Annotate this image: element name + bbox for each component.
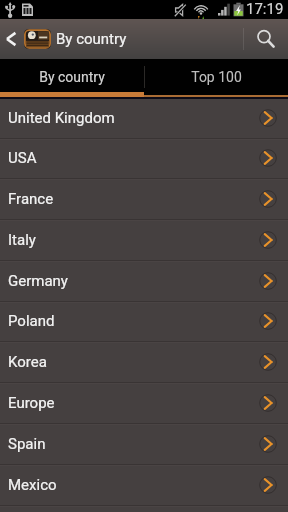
button[interactable]: Spain [0,425,288,464]
staticText: 17:19 [246,0,284,17]
staticText: Top 100 [191,69,242,85]
staticText: Spain [8,435,46,453]
staticText: Germany [8,272,68,290]
staticText: United Kingdom [8,109,115,127]
button[interactable]: France [0,180,288,219]
button[interactable]: Europe [0,384,288,423]
button[interactable]: Germany [0,262,288,301]
button[interactable]: United Kingdom [0,99,288,138]
staticText: Korea [8,353,47,371]
button[interactable]: Korea [0,343,288,382]
staticText: By country [56,30,127,48]
button[interactable]: Search [244,19,288,59]
staticText: Europe [8,394,55,412]
button[interactable]: Top 100 [144,61,288,92]
staticText: Mexico [8,476,57,494]
staticText: Poland [8,312,55,330]
staticText: By country [39,69,105,85]
button[interactable]: Italy [0,221,288,260]
staticText: Italy [8,231,36,249]
button[interactable]: Poland [0,303,288,341]
staticText: USA [8,149,37,167]
button[interactable]: Mexico [0,466,288,505]
staticText: France [8,190,54,208]
button[interactable]: By country [0,61,144,92]
button[interactable]: USA [0,140,288,178]
button[interactable]: Navigate up [0,19,53,59]
